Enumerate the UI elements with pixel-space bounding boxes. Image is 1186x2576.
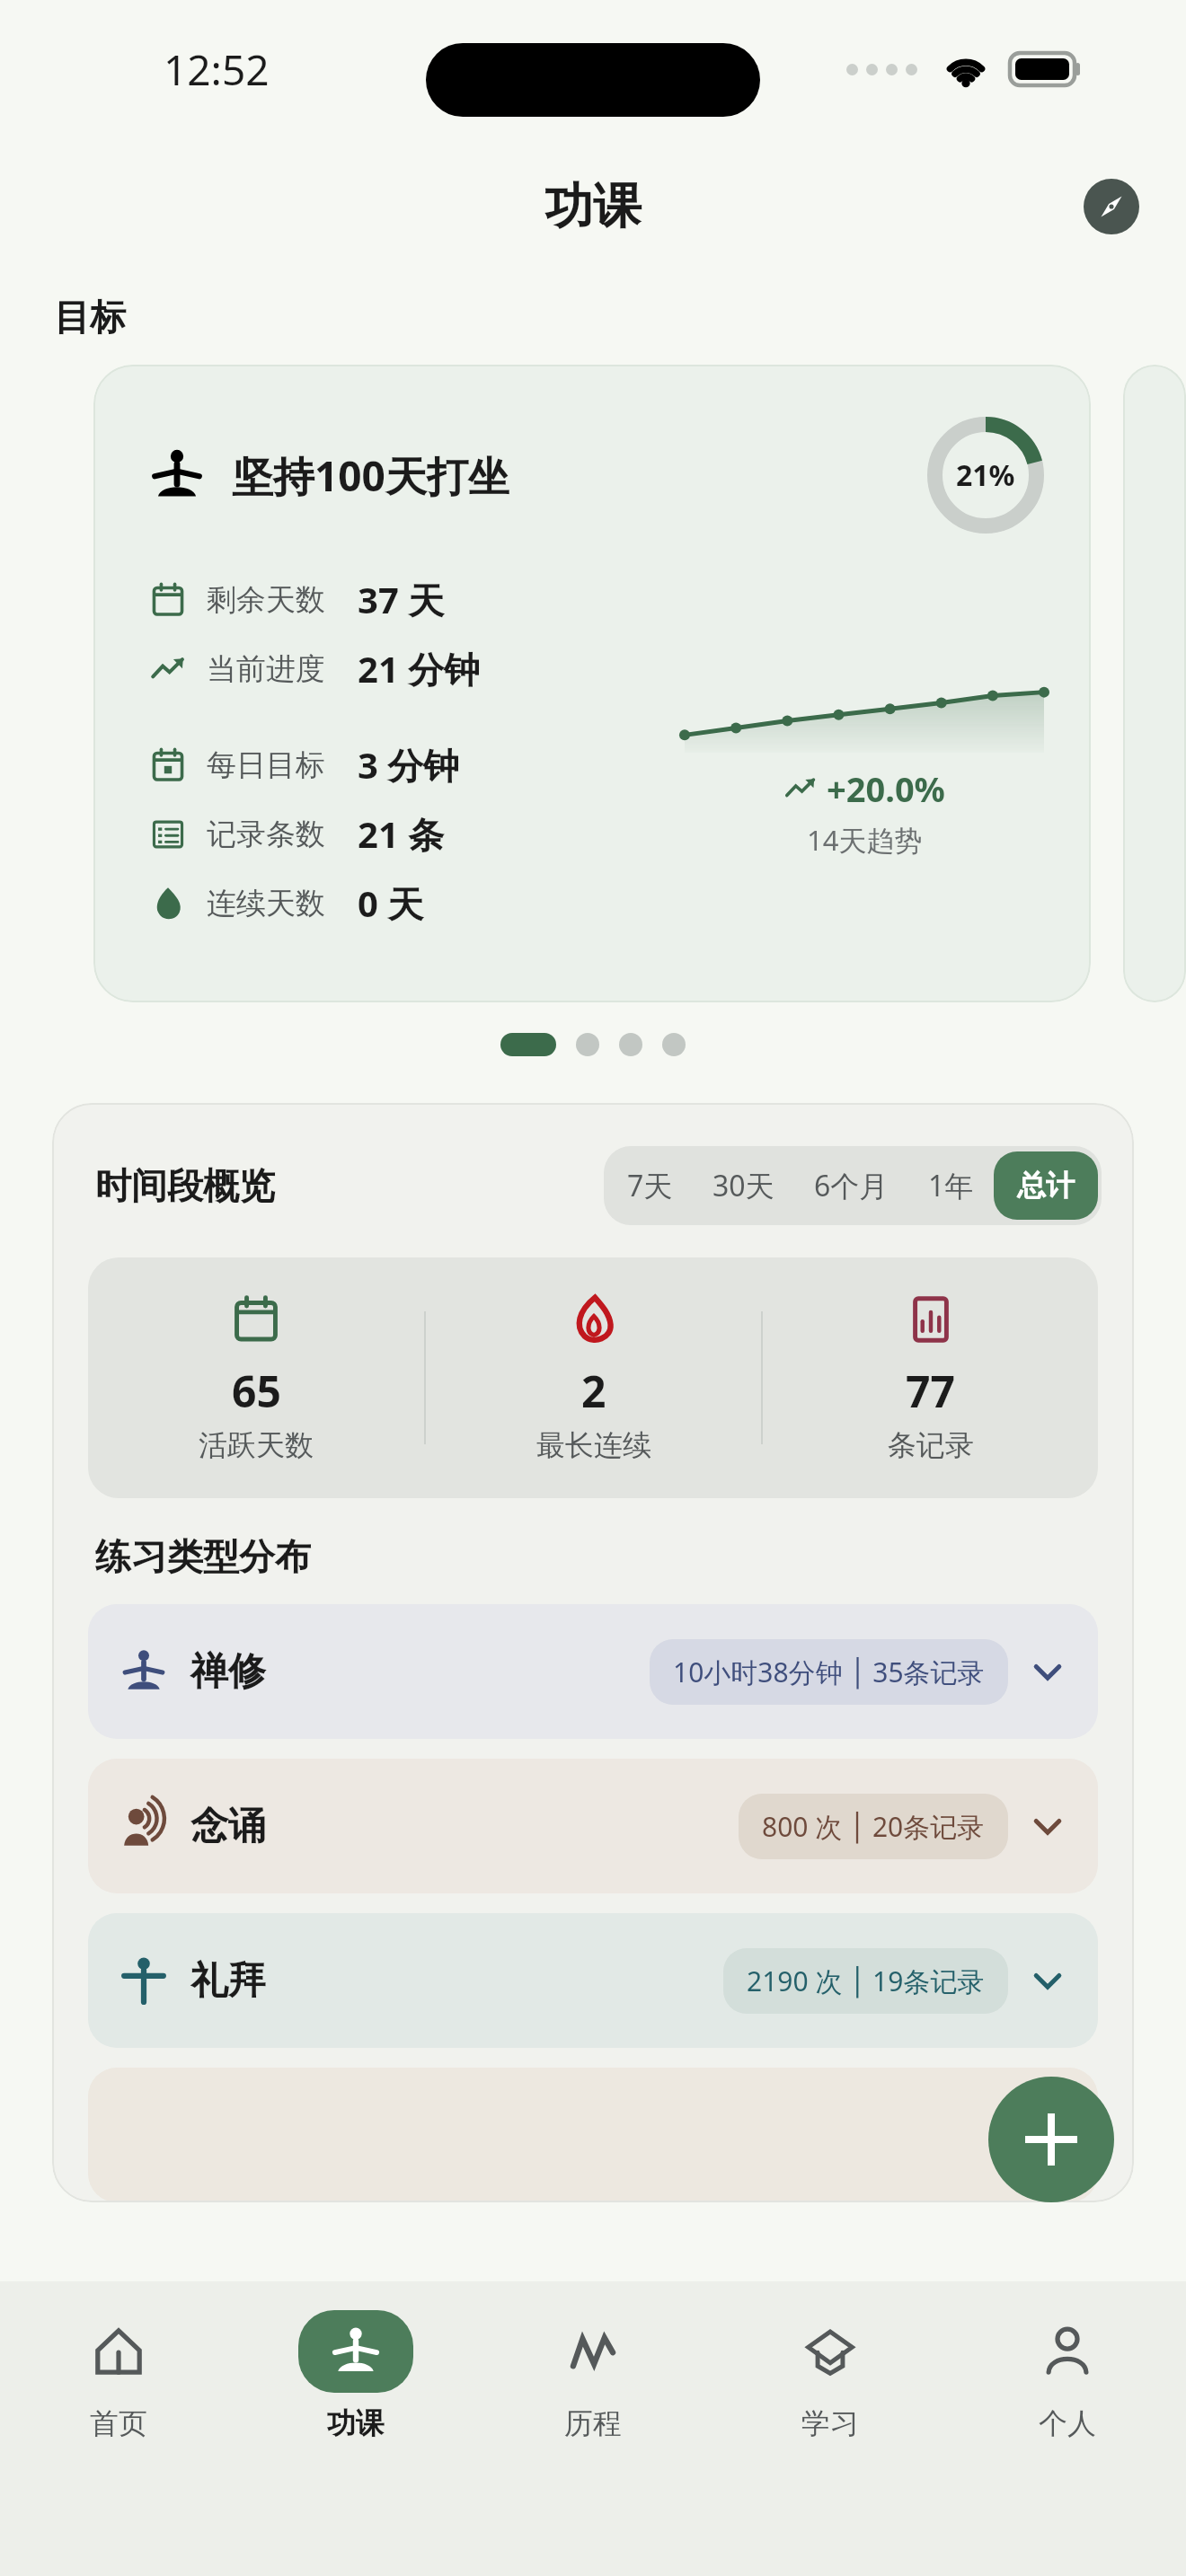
staticText: 首页 <box>90 2405 147 2441</box>
staticText: 历程 <box>564 2405 622 2441</box>
staticText: 条记录 <box>888 1427 974 1463</box>
staticText: 时间段概览 <box>95 1163 275 1208</box>
button[interactable]: 念诵 <box>88 1759 1098 1893</box>
button[interactable]: 个人 <box>949 2305 1186 2441</box>
staticText: 65 <box>232 1362 281 1420</box>
staticText: 功课 <box>327 2405 385 2441</box>
staticText: 10小时38分钟 │ 35条记录 <box>673 1654 985 1690</box>
staticText: 念诵 <box>190 1803 266 1850</box>
button[interactable]: 1年 <box>908 1150 994 1222</box>
staticText: 活跃天数 <box>199 1427 314 1463</box>
staticText: 最长连续 <box>536 1427 651 1463</box>
staticText: 12:52 <box>164 41 270 98</box>
other: 展开 <box>1030 1963 1066 1998</box>
staticText: 学习 <box>801 2405 859 2441</box>
button[interactable]: 历程 <box>474 2305 712 2441</box>
other: 展开 <box>1030 1654 1066 1689</box>
button[interactable]: 30天 <box>693 1150 794 1222</box>
staticText: 21 条 <box>358 809 445 859</box>
staticText: 14天趋势 <box>807 821 923 859</box>
button[interactable]: 首页 <box>0 2305 237 2441</box>
button[interactable]: 6个月 <box>794 1150 908 1222</box>
button[interactable]: 坚持100天打坐 <box>93 365 1091 1002</box>
staticText: 礼拜 <box>190 1957 266 2005</box>
staticText: 练习类型分布 <box>95 1534 311 1579</box>
staticText: 禅修 <box>190 1648 266 1696</box>
staticText: 0 天 <box>358 878 424 928</box>
button[interactable]: 学习 <box>712 2305 949 2441</box>
staticText: 2190 次 │ 19条记录 <box>747 1963 985 1999</box>
button[interactable] <box>88 2068 1098 2202</box>
staticText: 77 <box>906 1362 955 1420</box>
staticText: 3 分钟 <box>358 740 460 790</box>
staticText: 坚持100天打坐 <box>232 447 509 504</box>
staticText: 800 次 │ 20条记录 <box>762 1808 985 1845</box>
staticText: 剩余天数 <box>207 581 358 619</box>
staticText: 连续天数 <box>207 885 358 922</box>
staticText: 30天 <box>712 1166 774 1205</box>
button[interactable]: 禅修 <box>88 1604 1098 1739</box>
button[interactable]: 礼拜 <box>88 1913 1098 2048</box>
button[interactable]: 功课 <box>237 2305 474 2441</box>
button[interactable]: 总计 <box>994 1151 1098 1220</box>
staticText: 记录条数 <box>207 816 358 853</box>
staticText: 6个月 <box>814 1166 889 1205</box>
staticText: +20.0% <box>827 765 945 812</box>
staticText: 总计 <box>1017 1168 1075 1204</box>
other: 展开 <box>1030 1808 1066 1844</box>
staticText: 功课 <box>544 176 642 237</box>
staticText: 37 天 <box>358 575 445 624</box>
staticText: 个人 <box>1039 2405 1096 2441</box>
staticText: 当前进度 <box>207 650 358 688</box>
button[interactable]: 添加记录 <box>988 2077 1114 2202</box>
staticText: 7天 <box>627 1166 673 1205</box>
button[interactable]: 探索 <box>1084 179 1139 234</box>
button[interactable]: 7天 <box>607 1150 693 1222</box>
staticText: 2 <box>581 1362 606 1420</box>
staticText: 每日目标 <box>207 746 358 784</box>
staticText: 目标 <box>54 295 126 340</box>
staticText: 1年 <box>928 1166 974 1205</box>
staticText: 21 分钟 <box>358 644 481 693</box>
staticText: 21% <box>956 455 1015 495</box>
